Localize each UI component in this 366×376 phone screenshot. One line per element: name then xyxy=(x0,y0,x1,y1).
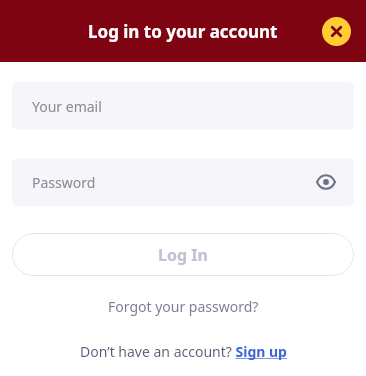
button[interactable]: Your email xyxy=(12,82,354,130)
button[interactable]: Close xyxy=(322,17,351,46)
button[interactable]: Forgot your password? xyxy=(100,293,267,320)
staticText: Forgot your password? xyxy=(108,297,259,316)
button[interactable]: Show password xyxy=(312,168,340,196)
button[interactable]: Password xyxy=(12,158,354,206)
staticText: Don’t have an account? Sign up xyxy=(80,342,287,361)
button[interactable]: Don’t have an account? Sign up xyxy=(74,338,293,365)
staticText: Log in to your account xyxy=(88,20,278,43)
staticText: Log In xyxy=(158,244,208,266)
staticText: Your email xyxy=(32,97,102,116)
button[interactable]: Log In xyxy=(12,233,354,276)
staticText: Password xyxy=(32,173,96,192)
